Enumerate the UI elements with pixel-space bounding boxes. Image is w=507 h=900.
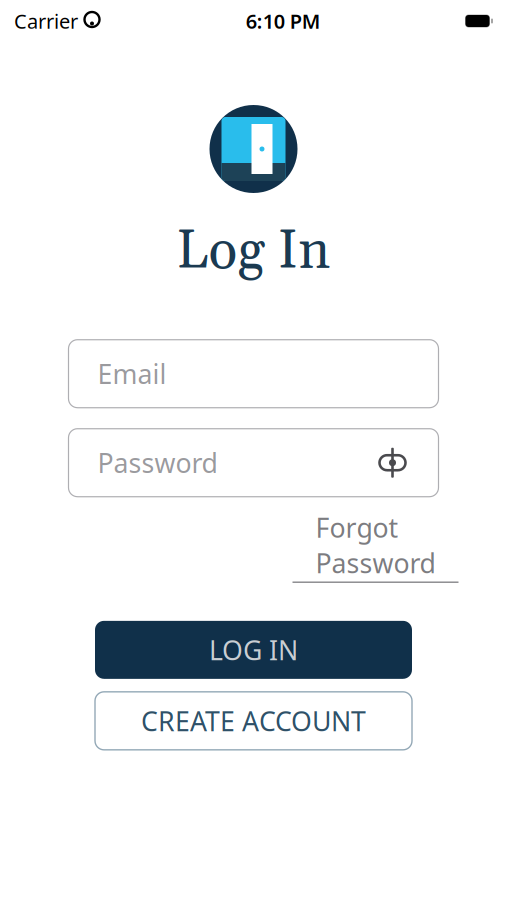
staticText: LOG IN <box>209 632 298 667</box>
staticText: Carrier <box>14 8 78 34</box>
staticText: Log In <box>176 218 330 286</box>
staticText: 6:10 PM <box>246 8 321 34</box>
button[interactable]: Forgot Password <box>292 510 458 583</box>
button[interactable]: Show password <box>375 448 409 478</box>
staticText: CREATE ACCOUNT <box>141 703 366 738</box>
button[interactable]: CREATE ACCOUNT <box>95 692 412 750</box>
staticText: Forgot Password <box>315 510 435 580</box>
staticText: Password <box>97 445 217 480</box>
staticText: Email <box>97 356 166 391</box>
button[interactable]: LOG IN <box>95 621 412 679</box>
